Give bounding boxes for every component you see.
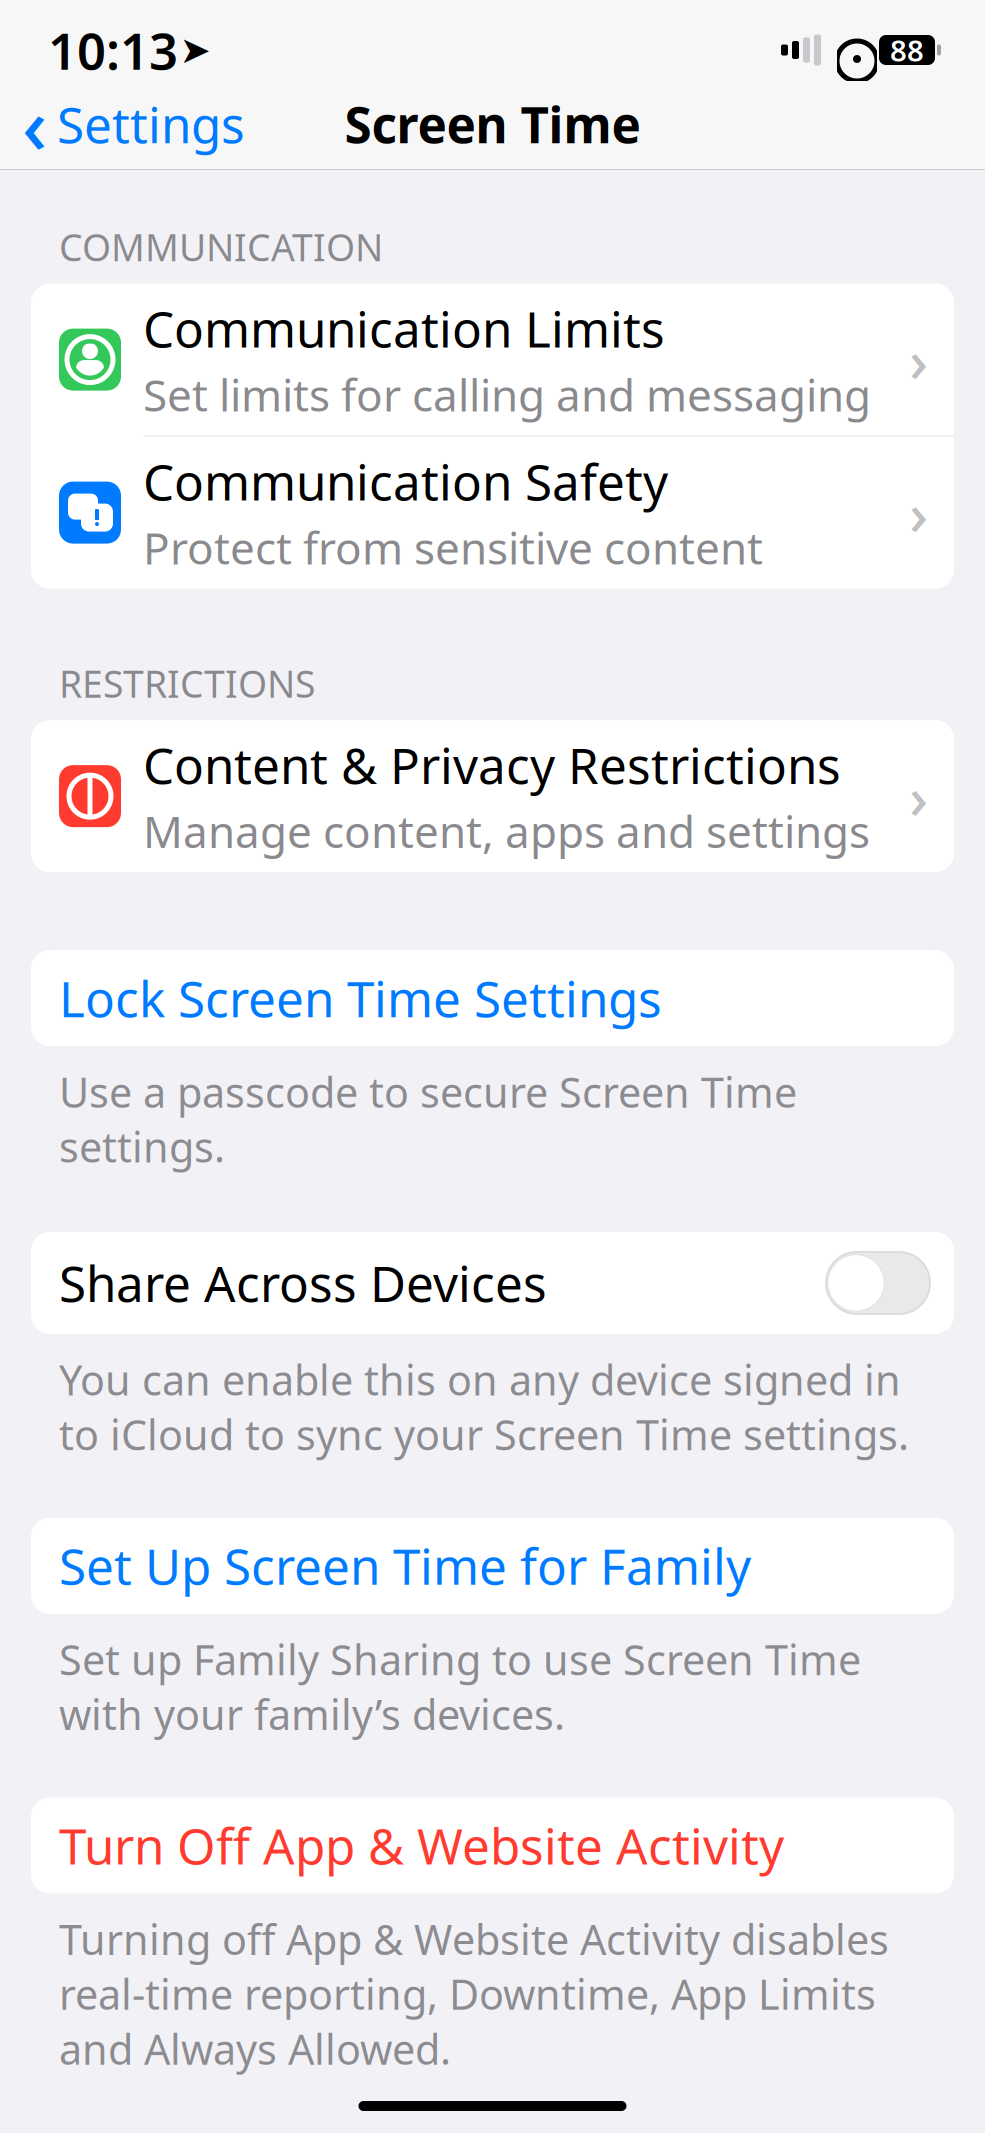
staticText: Communication Safety bbox=[143, 449, 668, 514]
button[interactable]: Content & Privacy Restrictions bbox=[31, 720, 954, 872]
staticText: Use a passcode to secure Screen Time set… bbox=[59, 1064, 797, 1174]
staticText: › bbox=[909, 474, 928, 551]
staticText: › bbox=[909, 757, 928, 835]
button[interactable]: Set Up Screen Time for Family bbox=[31, 1518, 954, 1614]
staticText: ➤ bbox=[179, 29, 210, 71]
staticText: Set Up Screen Time for Family bbox=[59, 1533, 751, 1598]
staticText: COMMUNICATION bbox=[59, 222, 383, 272]
button[interactable]: Lock Screen Time Settings bbox=[31, 950, 954, 1046]
button[interactable]: Turn Off App & Website Activity bbox=[31, 1797, 954, 1893]
staticText: Turn Off App & Website Activity bbox=[59, 1813, 784, 1878]
staticText: Share Across Devices bbox=[59, 1250, 547, 1316]
button[interactable]: Share Across Devices bbox=[31, 1232, 954, 1334]
staticText: 10:13 bbox=[48, 16, 178, 84]
staticText: You can enable this on any device signed… bbox=[59, 1352, 909, 1462]
button[interactable]: Communication Safety bbox=[31, 437, 954, 589]
button[interactable]: ‹ bbox=[0, 88, 261, 160]
staticText: Set limits for calling and messaging bbox=[143, 365, 871, 423]
staticText: Turning off App & Website Activity disab… bbox=[59, 1911, 889, 2076]
staticText: › bbox=[909, 321, 928, 398]
staticText: Lock Screen Time Settings bbox=[59, 965, 662, 1031]
staticText: RESTRICTIONS bbox=[59, 659, 315, 708]
staticText: ‹ bbox=[22, 73, 47, 175]
staticText: Screen Time bbox=[344, 91, 640, 157]
staticText: Communication Limits bbox=[143, 296, 665, 361]
button[interactable]: Communication Limits bbox=[31, 284, 954, 436]
staticText: 88 bbox=[890, 30, 924, 69]
staticText: Set up Family Sharing to use Screen Time… bbox=[59, 1632, 861, 1741]
staticText: Protect from sensitive content bbox=[143, 518, 763, 576]
staticText: Content & Privacy Restrictions bbox=[143, 732, 841, 798]
staticText: Settings bbox=[57, 91, 245, 157]
staticText: Manage content, apps and settings bbox=[143, 802, 870, 860]
